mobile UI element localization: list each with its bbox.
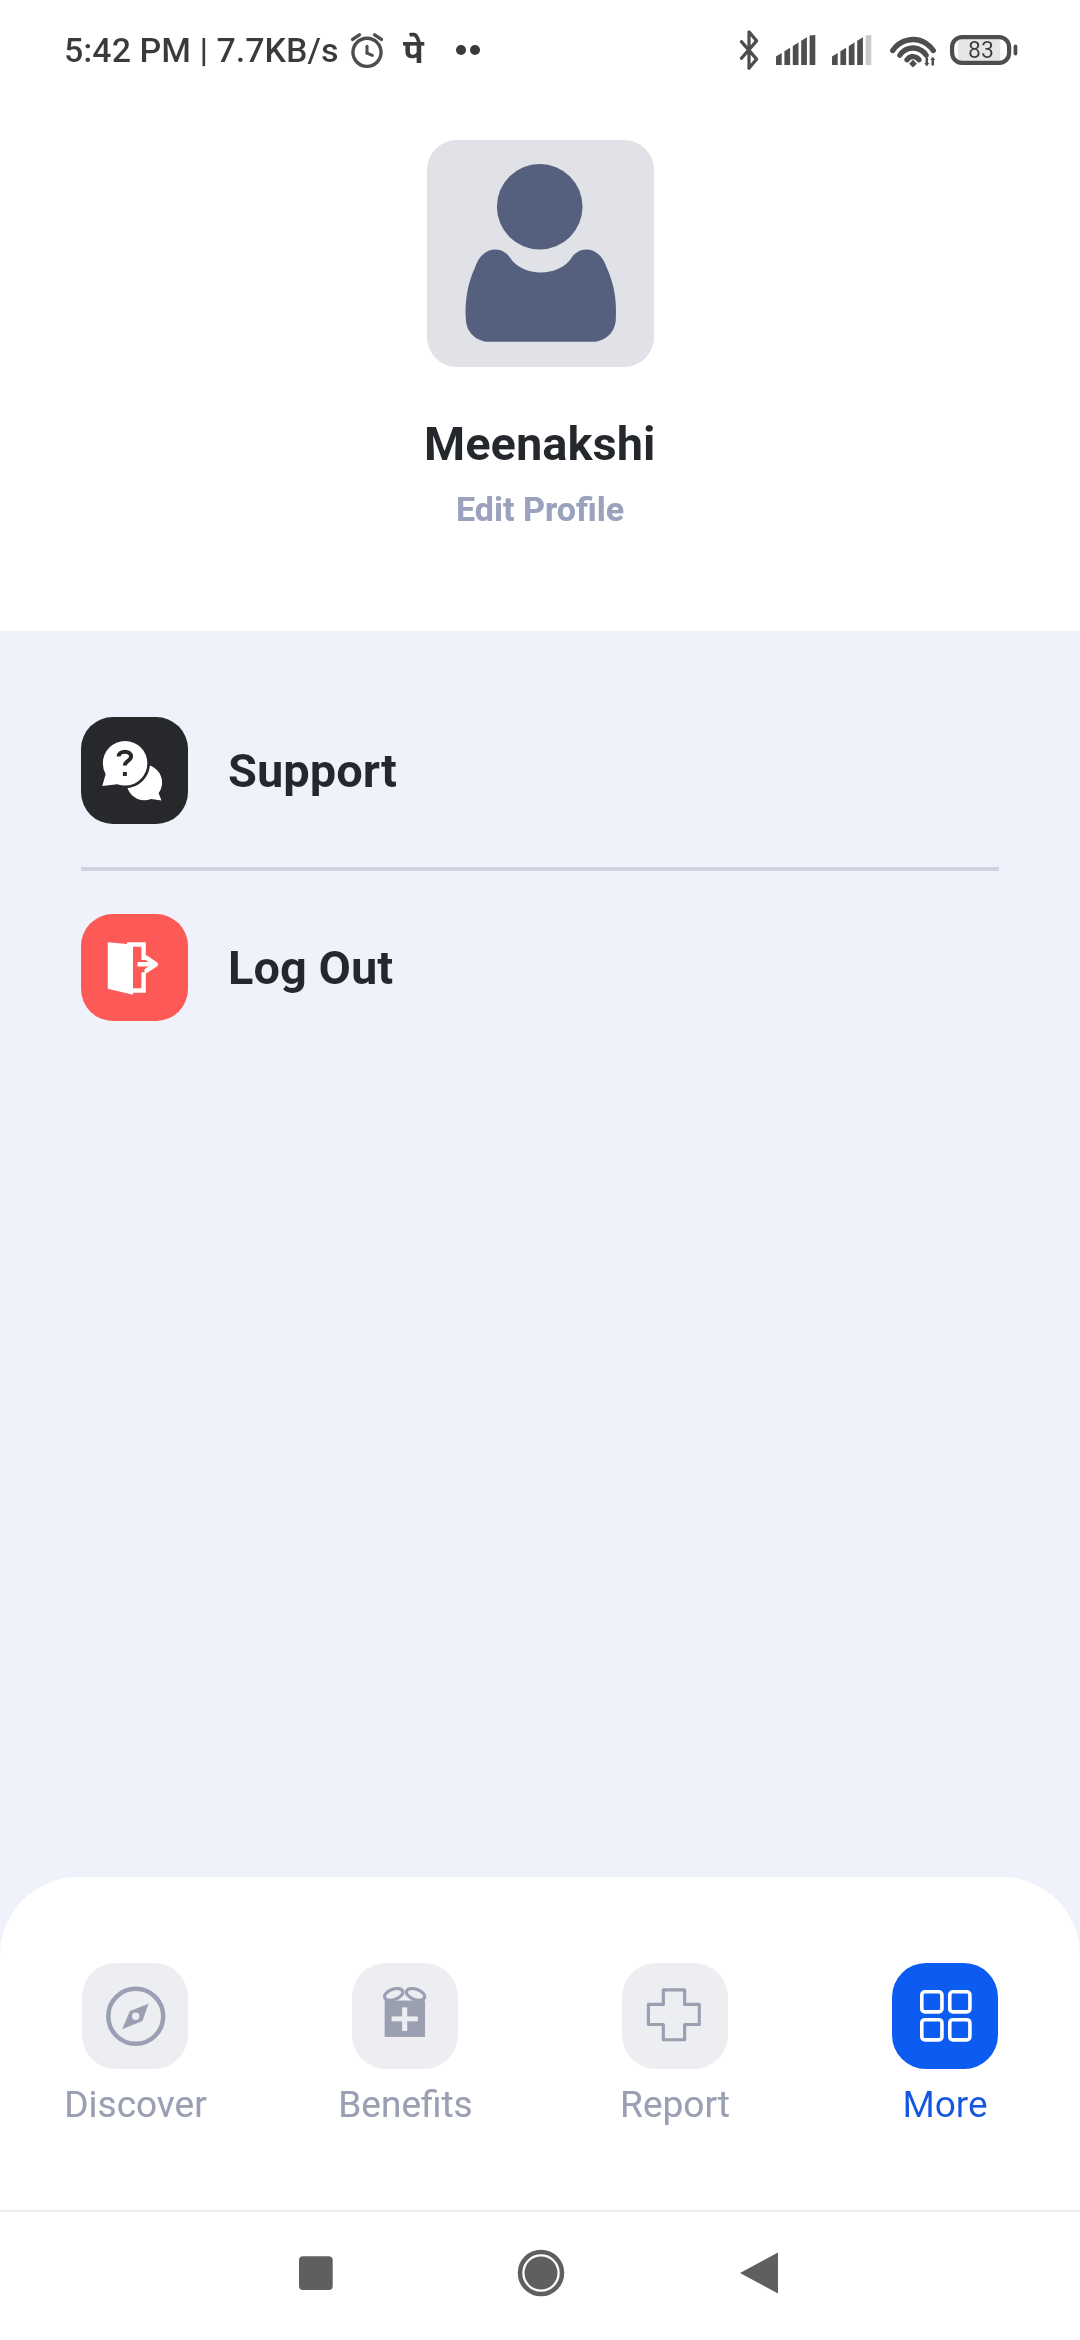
button[interactable]: Benefits bbox=[270, 1963, 540, 2126]
staticText: 5:42 PM | 7.7KB/s bbox=[64, 30, 339, 70]
button[interactable]: Log Out bbox=[0, 871, 1080, 1064]
staticText: Report bbox=[620, 2083, 730, 2126]
button[interactable]: Support bbox=[0, 674, 1080, 867]
staticText: More bbox=[902, 2083, 988, 2126]
button[interactable]: Report bbox=[540, 1963, 810, 2126]
staticText: Meenakshi bbox=[424, 416, 656, 471]
staticText: Edit Profile bbox=[456, 489, 625, 529]
staticText: Support bbox=[228, 743, 397, 798]
staticText: Log Out bbox=[228, 940, 394, 995]
staticText: Benefits bbox=[338, 2083, 473, 2126]
staticText: Discover bbox=[64, 2083, 207, 2126]
staticText: पे bbox=[403, 27, 424, 73]
button[interactable]: Discover bbox=[0, 1963, 270, 2126]
button[interactable]: More bbox=[810, 1963, 1080, 2126]
staticText: 83 bbox=[968, 37, 994, 64]
button[interactable]: Edit Profile bbox=[444, 485, 637, 533]
button[interactable]: Profile photo bbox=[427, 140, 654, 367]
